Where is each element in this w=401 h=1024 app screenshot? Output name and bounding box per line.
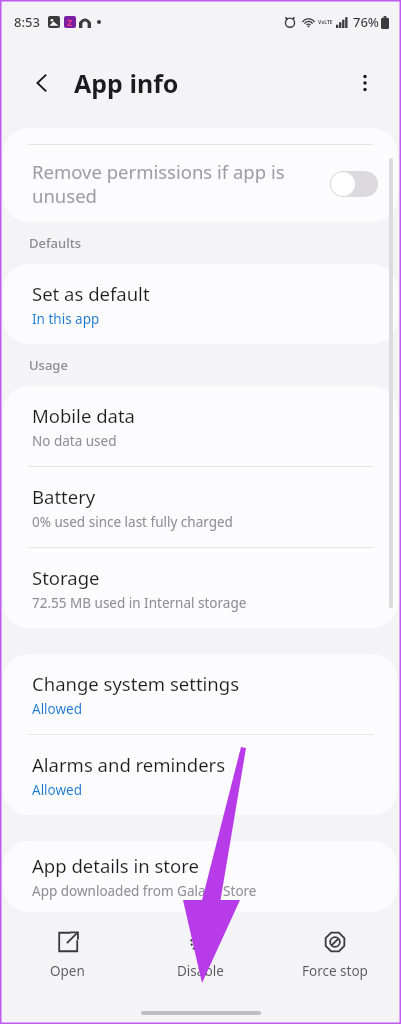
button[interactable]: Remove permissions if app is unused [3,145,398,222]
staticText: Disable [177,962,224,980]
staticText: Z [67,16,73,28]
staticText: No data used [32,432,117,450]
staticText: VoLTE [318,19,333,26]
staticText: Defaults [29,234,82,252]
button[interactable]: Open [1,912,134,998]
button[interactable]: Back [26,66,60,100]
button[interactable]: Change system settings [3,654,398,734]
staticText: Alarms and reminders [32,752,226,777]
staticText: 8:53 [14,13,40,31]
staticText: Allowed [32,781,83,799]
button[interactable]: Storage [3,548,398,628]
staticText: Open [50,962,85,980]
staticText: Allowed [32,700,83,718]
staticText: App info [74,66,179,100]
button[interactable]: App details in store [3,841,398,912]
staticText: 76% [353,13,379,31]
staticText: Force stop [302,962,368,980]
button[interactable]: Set as default [3,264,398,344]
staticText: Remove permissions if app is unused [32,159,320,208]
button[interactable]: Battery [3,467,398,547]
staticText: Usage [29,356,68,374]
staticText: 72.55 MB used in Internal storage [32,594,247,612]
staticText: Storage [32,565,100,590]
button[interactable]: More options [345,63,385,103]
staticText: Set as default [32,281,150,306]
staticText: In this app [32,310,100,328]
button[interactable]: Mobile data [3,386,398,466]
staticText: App details in store [32,853,199,878]
button[interactable]: Force stop [268,912,401,998]
staticText: App downloaded from Galaxy Store [32,882,257,900]
staticText: Battery [32,484,96,509]
staticText: Mobile data [32,403,135,428]
button[interactable]: Disable [134,912,267,998]
staticText: Change system settings [32,671,240,696]
button[interactable]: Alarms and reminders [3,735,398,815]
staticText: 0% used since last fully charged [32,513,233,531]
